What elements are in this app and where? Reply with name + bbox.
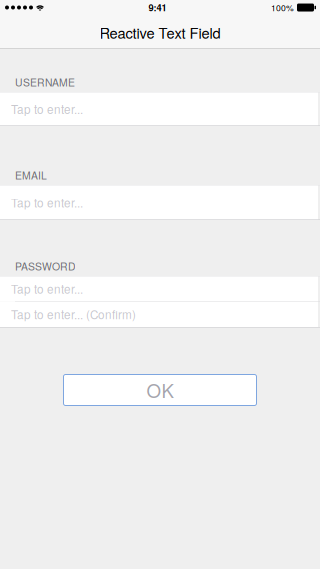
button[interactable]: Tap to enter... (0, 276, 320, 301)
button[interactable]: Tap to enter... (0, 92, 320, 125)
staticText: EMAIL (15, 168, 47, 182)
staticText: OK (146, 377, 173, 403)
staticText: Tap to enter... (11, 194, 83, 211)
staticText: Tap to enter... (11, 280, 83, 297)
button[interactable]: OK (63, 374, 256, 405)
staticText: Tap to enter... (Confirm) (11, 306, 136, 323)
staticText: PASSWORD (15, 259, 76, 273)
staticText: USERNAME (15, 75, 75, 89)
staticText: 100% (271, 1, 294, 14)
staticText: Tap to enter... (11, 101, 83, 117)
button[interactable]: Tap to enter... (0, 185, 320, 219)
button[interactable]: Tap to enter... (Confirm) (0, 301, 320, 327)
staticText: 9:41 (148, 1, 166, 14)
staticText: Reactive Text Field (99, 22, 220, 43)
